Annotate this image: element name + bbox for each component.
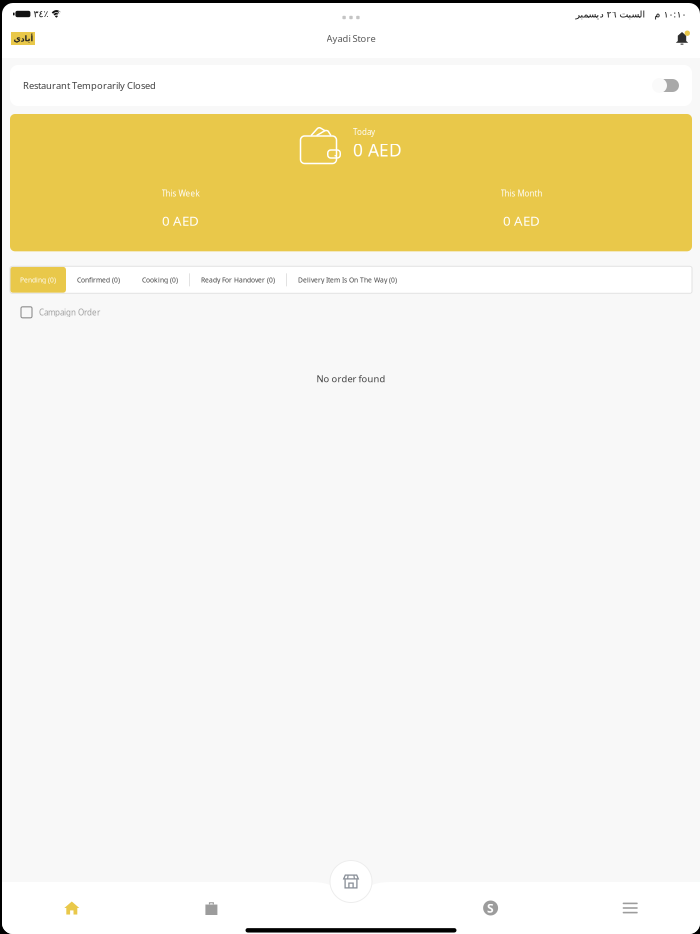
staticText: Ayadi Store [326,32,375,45]
staticText: No order found [316,372,385,385]
staticText: Campaign Order [39,307,100,318]
staticText: Confirmed (0) [77,275,120,284]
button[interactable]: Pending (0) [10,267,66,293]
button[interactable]: Store [329,860,372,903]
staticText: Cooking (0) [142,275,178,284]
staticText: 0 AED [503,212,540,229]
button[interactable]: Delivery Item Is On The Way (0) [287,267,408,293]
button[interactable]: Home [2,882,142,934]
staticText: ٣٤٪ [33,9,48,19]
button[interactable]: Ayadi logo [11,32,35,45]
button[interactable]: Menu [560,882,700,934]
button[interactable]: Restaurant Temporarily Closed [10,65,692,106]
staticText: Ready For Handover (0) [201,275,275,284]
button[interactable]: Cooking (0) [131,267,189,293]
staticText: S [487,900,494,916]
staticText: This Month [500,188,542,199]
staticText: Pending (0) [20,275,56,284]
button[interactable]: Campaign Order [2,302,700,322]
staticText: 0 AED [353,138,402,161]
staticText: Restaurant Temporarily Closed [23,79,156,92]
button[interactable]: Confirmed (0) [66,267,131,293]
staticText: ١٠:١٠ م السبت ٢٦ ديسمبر [575,8,686,20]
button[interactable]: Orders [142,882,281,934]
staticText: 0 AED [162,212,199,229]
staticText: أيادي [13,34,33,43]
button[interactable]: Earnings [421,882,560,934]
button[interactable]: Notifications [674,30,690,46]
button[interactable]: Ready For Handover (0) [190,267,286,293]
staticText: Delivery Item Is On The Way (0) [298,275,397,284]
staticText: This Week [161,188,199,199]
staticText: Today [353,127,375,137]
